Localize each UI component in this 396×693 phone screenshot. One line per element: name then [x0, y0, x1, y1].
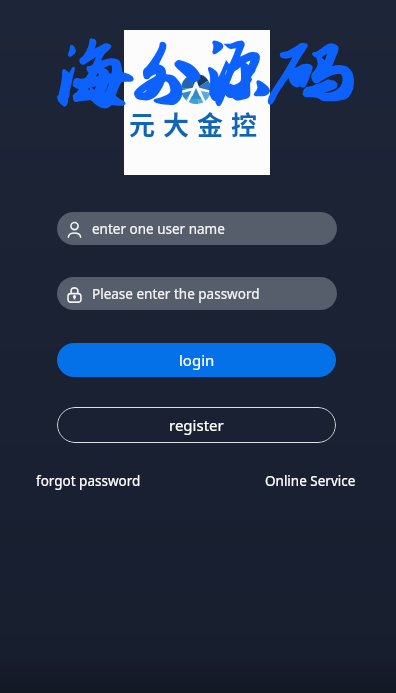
staticText: Online Service: [265, 472, 356, 490]
button[interactable]: enter one user name: [57, 212, 337, 245]
button[interactable]: Please enter the password: [57, 277, 337, 310]
staticText: 元大金控: [129, 105, 266, 139]
button[interactable]: forgot password: [36, 472, 141, 490]
button[interactable]: Online Service: [265, 472, 356, 490]
staticText: 海外源码: [54, 29, 342, 121]
button[interactable]: register: [57, 407, 336, 443]
staticText: forgot password: [36, 472, 141, 490]
staticText: login: [179, 350, 215, 370]
staticText: Please enter the password: [92, 285, 260, 303]
button[interactable]: login: [57, 343, 336, 377]
staticText: enter one user name: [92, 220, 225, 238]
staticText: 海外源码: [54, 29, 342, 121]
staticText: register: [169, 415, 224, 435]
